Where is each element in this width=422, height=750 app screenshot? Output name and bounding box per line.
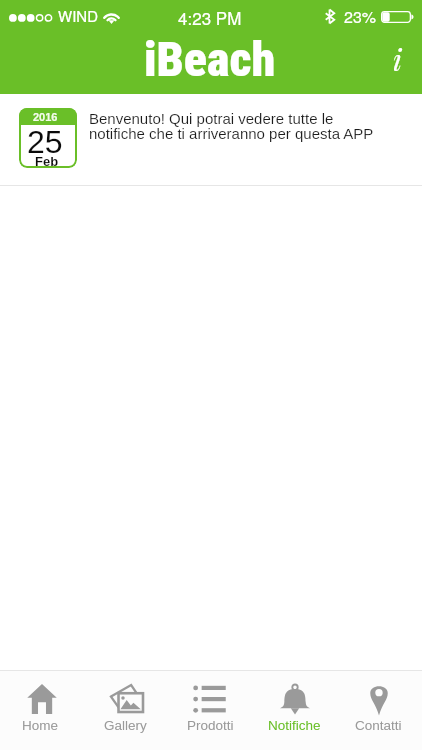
staticText: Contatti (355, 718, 402, 733)
button[interactable]: Info (375, 36, 421, 82)
staticText: 2016 (33, 111, 58, 123)
staticText: 4:23 PM (178, 5, 242, 29)
button[interactable]: Home (0, 671, 85, 750)
staticText: notifiche che ti arriveranno per questa … (89, 125, 374, 142)
staticText: 25 (27, 124, 63, 160)
staticText: Benvenuto! Qui potrai vedere tutte le (89, 110, 334, 127)
staticText: Feb (35, 154, 59, 168)
button[interactable]: Contatti (338, 671, 422, 750)
staticText: i (393, 40, 402, 79)
staticText: 23% (344, 5, 377, 28)
button[interactable]: Gallery (85, 671, 170, 750)
staticText: Notifiche (268, 718, 321, 733)
staticText: Gallery (104, 718, 147, 733)
staticText: WIND (58, 5, 98, 26)
button[interactable]: Notifiche (254, 671, 338, 750)
staticText: iBeach (144, 31, 276, 87)
staticText: Home (22, 718, 59, 733)
button[interactable]: 2016 (0, 94, 422, 185)
staticText: Prodotti (187, 718, 234, 733)
button[interactable]: Prodotti (170, 671, 254, 750)
